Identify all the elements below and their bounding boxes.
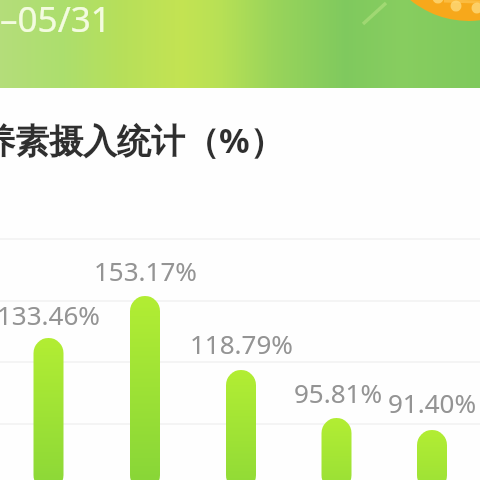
- staticText: 营养素摄入统计（%）: [0, 117, 284, 163]
- button[interactable]: Date range 05/25 - 05/31: [0, 0, 480, 88]
- staticText: 133.46%: [0, 297, 100, 332]
- staticText: 95.81%: [294, 375, 383, 410]
- staticText: 153.17%: [94, 253, 197, 288]
- button[interactable]: Nutrient bar 4: [322, 418, 352, 480]
- button[interactable]: Nutrient bar 5: [417, 430, 447, 480]
- staticText: 91.40%: [388, 385, 477, 420]
- button[interactable]: Nutrient bar 2: [130, 296, 160, 480]
- button[interactable]: Nutrient bar 1: [34, 338, 64, 480]
- button[interactable]: Nutrient bar 3: [226, 370, 256, 480]
- staticText: 05/25–05/31: [0, 0, 111, 43]
- staticText: 118.79%: [190, 326, 293, 361]
